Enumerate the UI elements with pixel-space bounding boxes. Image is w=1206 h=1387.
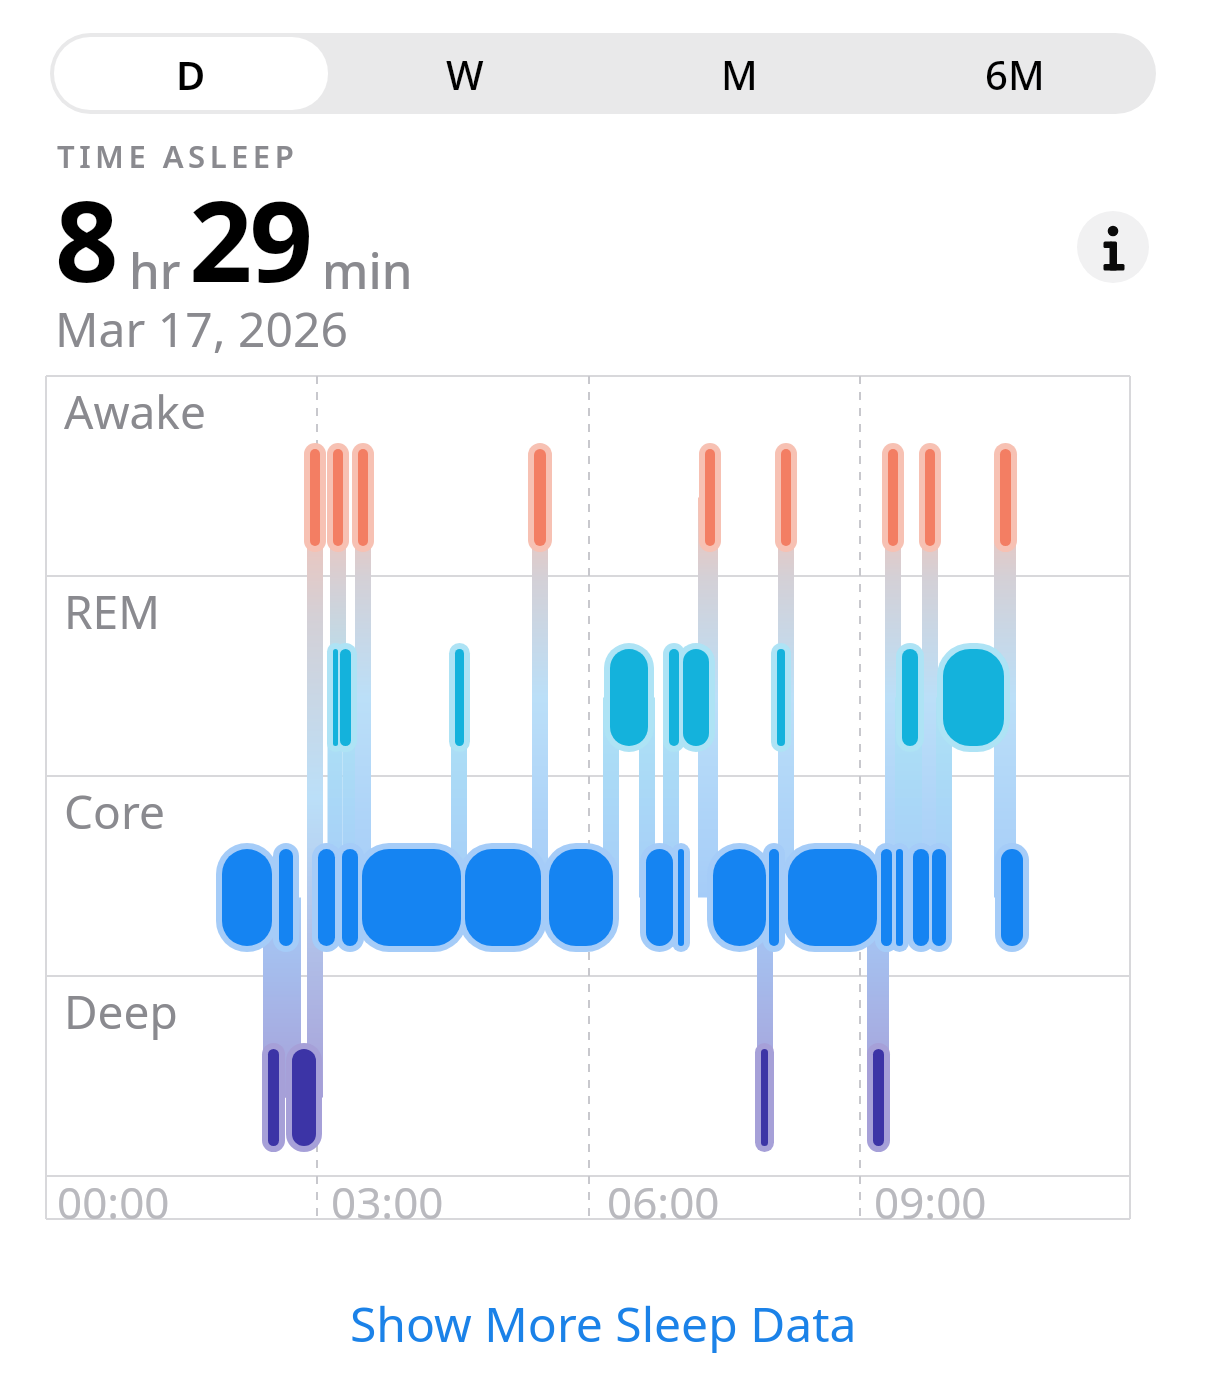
staticText: 29 [189, 163, 310, 314]
staticText: min [322, 237, 413, 304]
button[interactable]: D [54, 37, 328, 110]
staticText: Deep [64, 980, 178, 1043]
staticText: 03:00 [331, 1172, 444, 1232]
staticText: Mar 17, 2026 [55, 296, 348, 361]
staticText: TIME ASLEEP [57, 135, 299, 177]
button[interactable]: Show More Sleep Data [342, 1285, 865, 1362]
staticText: Awake [64, 380, 206, 443]
staticText: Show More Sleep Data [350, 1291, 857, 1356]
button[interactable]: 6M [877, 37, 1152, 110]
staticText: 00:00 [57, 1172, 170, 1232]
staticText: 8 [55, 163, 119, 314]
staticText: 6M [985, 47, 1045, 101]
button[interactable] [1077, 211, 1149, 283]
button[interactable]: M [602, 37, 877, 110]
staticText: REM [64, 580, 160, 643]
staticText: Core [64, 780, 165, 843]
staticText: 06:00 [607, 1172, 720, 1232]
button[interactable]: W [328, 37, 602, 110]
staticText: M [721, 47, 758, 101]
staticText: W [446, 47, 484, 101]
staticText: D [176, 47, 206, 101]
staticText: hr [129, 237, 181, 304]
staticText: 09:00 [874, 1172, 987, 1232]
